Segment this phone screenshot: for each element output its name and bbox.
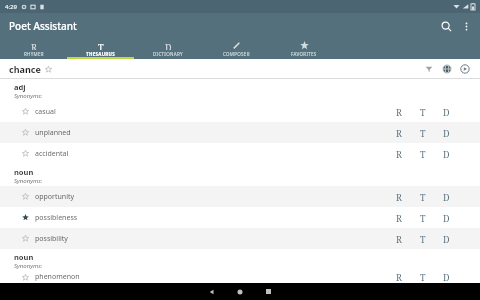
button[interactable]: R (392, 271, 405, 283)
button[interactable]: T (416, 105, 429, 118)
button[interactable]: T (416, 147, 429, 160)
staticText: Synonyms: (14, 177, 43, 185)
button[interactable]: R (392, 105, 405, 118)
button[interactable]: Back (198, 283, 226, 300)
staticText: noun (14, 252, 34, 262)
button[interactable]: COMPOSER (202, 39, 270, 59)
staticText: R (31, 41, 37, 50)
button[interactable]: R (392, 232, 405, 245)
staticText: R (396, 148, 402, 160)
button[interactable]: Web search (439, 61, 455, 77)
button[interactable]: More options (456, 16, 476, 36)
staticText: T (420, 212, 426, 224)
staticText: R (396, 106, 402, 118)
button[interactable]: Play pronunciation (457, 61, 473, 77)
staticText: possibleness (35, 213, 78, 223)
staticText: FAVORITES (291, 51, 317, 57)
staticText: D (443, 233, 450, 245)
button[interactable]: D (440, 211, 453, 224)
button[interactable]: R (392, 147, 405, 160)
button[interactable]: D (440, 232, 453, 245)
staticText: COMPOSER (223, 51, 250, 57)
button[interactable]: casual (0, 101, 480, 122)
staticText: chance (9, 63, 41, 75)
staticText: accidental (35, 149, 69, 159)
staticText: T (420, 233, 426, 245)
staticText: R (396, 212, 402, 224)
staticText: casual (35, 107, 56, 117)
button[interactable]: R (392, 211, 405, 224)
staticText: R (396, 191, 402, 203)
button[interactable]: accidental (0, 143, 480, 164)
staticText: D (443, 148, 450, 160)
staticText: possibility (35, 234, 68, 244)
button[interactable]: T (416, 190, 429, 203)
button[interactable]: unplanned (0, 122, 480, 143)
staticText: adj (14, 82, 26, 92)
button[interactable]: Filter (421, 61, 437, 77)
button[interactable]: Home (226, 283, 254, 300)
staticText: Poet Assistant (9, 19, 77, 33)
button[interactable]: D (134, 39, 202, 59)
staticText: R (396, 233, 402, 245)
staticText: D (443, 106, 450, 118)
staticText: D (443, 271, 450, 283)
staticText: D (165, 41, 172, 50)
staticText: R (396, 271, 402, 283)
staticText: THESAURUS (86, 51, 116, 57)
button[interactable]: Recent apps (254, 283, 282, 300)
button[interactable]: T (67, 39, 134, 59)
button[interactable]: D (440, 190, 453, 203)
button[interactable]: T (416, 232, 429, 245)
staticText: unplanned (35, 128, 71, 138)
button[interactable]: R (0, 39, 67, 59)
staticText: T (420, 271, 426, 283)
staticText: Synonyms: (14, 92, 43, 100)
button[interactable]: D (440, 105, 453, 118)
staticText: T (420, 191, 426, 203)
button[interactable]: D (440, 271, 453, 283)
button[interactable]: Search (436, 16, 456, 36)
button[interactable]: R (392, 190, 405, 203)
staticText: 4:29 (5, 3, 17, 11)
staticText: T (420, 127, 426, 139)
button[interactable]: T (416, 211, 429, 224)
staticText: RHYMER (24, 51, 44, 57)
button[interactable]: chance (9, 63, 52, 75)
staticText: T (98, 41, 104, 50)
button[interactable]: T (416, 271, 429, 283)
staticText: phenomenon (35, 272, 80, 282)
button[interactable]: phenomenon (0, 271, 480, 283)
staticText: D (443, 127, 450, 139)
button[interactable]: T (416, 126, 429, 139)
staticText: Synonyms: (14, 262, 43, 270)
button[interactable]: FAVORITES (270, 39, 338, 59)
staticText: D (443, 191, 450, 203)
button[interactable]: D (440, 126, 453, 139)
button[interactable]: possibility (0, 228, 480, 249)
staticText: R (396, 127, 402, 139)
staticText: noun (14, 167, 34, 177)
button[interactable]: R (392, 126, 405, 139)
staticText: opportunity (35, 192, 75, 202)
staticText: D (443, 212, 450, 224)
staticText: DICTIONARY (153, 51, 183, 57)
staticText: T (420, 106, 426, 118)
button[interactable]: opportunity (0, 186, 480, 207)
button[interactable]: D (440, 147, 453, 160)
staticText: T (420, 148, 426, 160)
button[interactable]: possibleness (0, 207, 480, 228)
